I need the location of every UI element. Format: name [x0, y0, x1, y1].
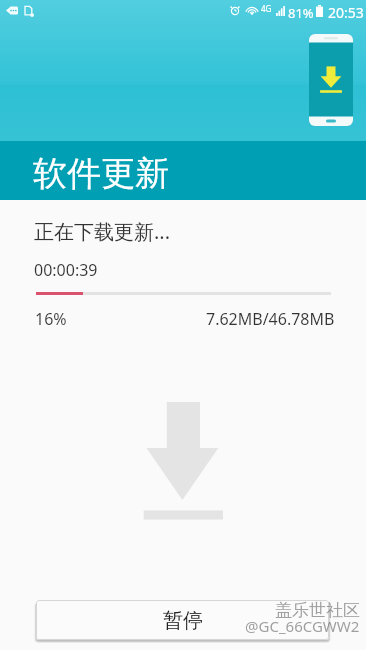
other: Alarm set [230, 6, 240, 16]
button[interactable]: 暂停 [36, 600, 329, 640]
other: Battery 81 percent [316, 5, 323, 17]
staticText: 正在下载更新... [34, 218, 171, 245]
staticText: 盖乐世社区 [275, 600, 360, 621]
staticText: 00:00:39 [34, 259, 98, 281]
staticText: 20:53 [328, 3, 364, 22]
staticText: 暂停 [163, 608, 203, 633]
staticText: 软件更新 [33, 152, 169, 195]
other: Mobile signal strength [276, 6, 285, 16]
staticText: 4G [261, 3, 272, 14]
other: New message [6, 6, 18, 15]
staticText: @GC_66CGWW2 [245, 616, 360, 636]
staticText: 7.62MB/46.78MB [206, 308, 335, 330]
staticText: 81% [288, 4, 314, 22]
staticText: 16% [35, 308, 67, 330]
other: Phone downloading update [309, 34, 353, 126]
other: Wi-Fi [247, 5, 257, 16]
other: Download in progress [24, 5, 34, 17]
